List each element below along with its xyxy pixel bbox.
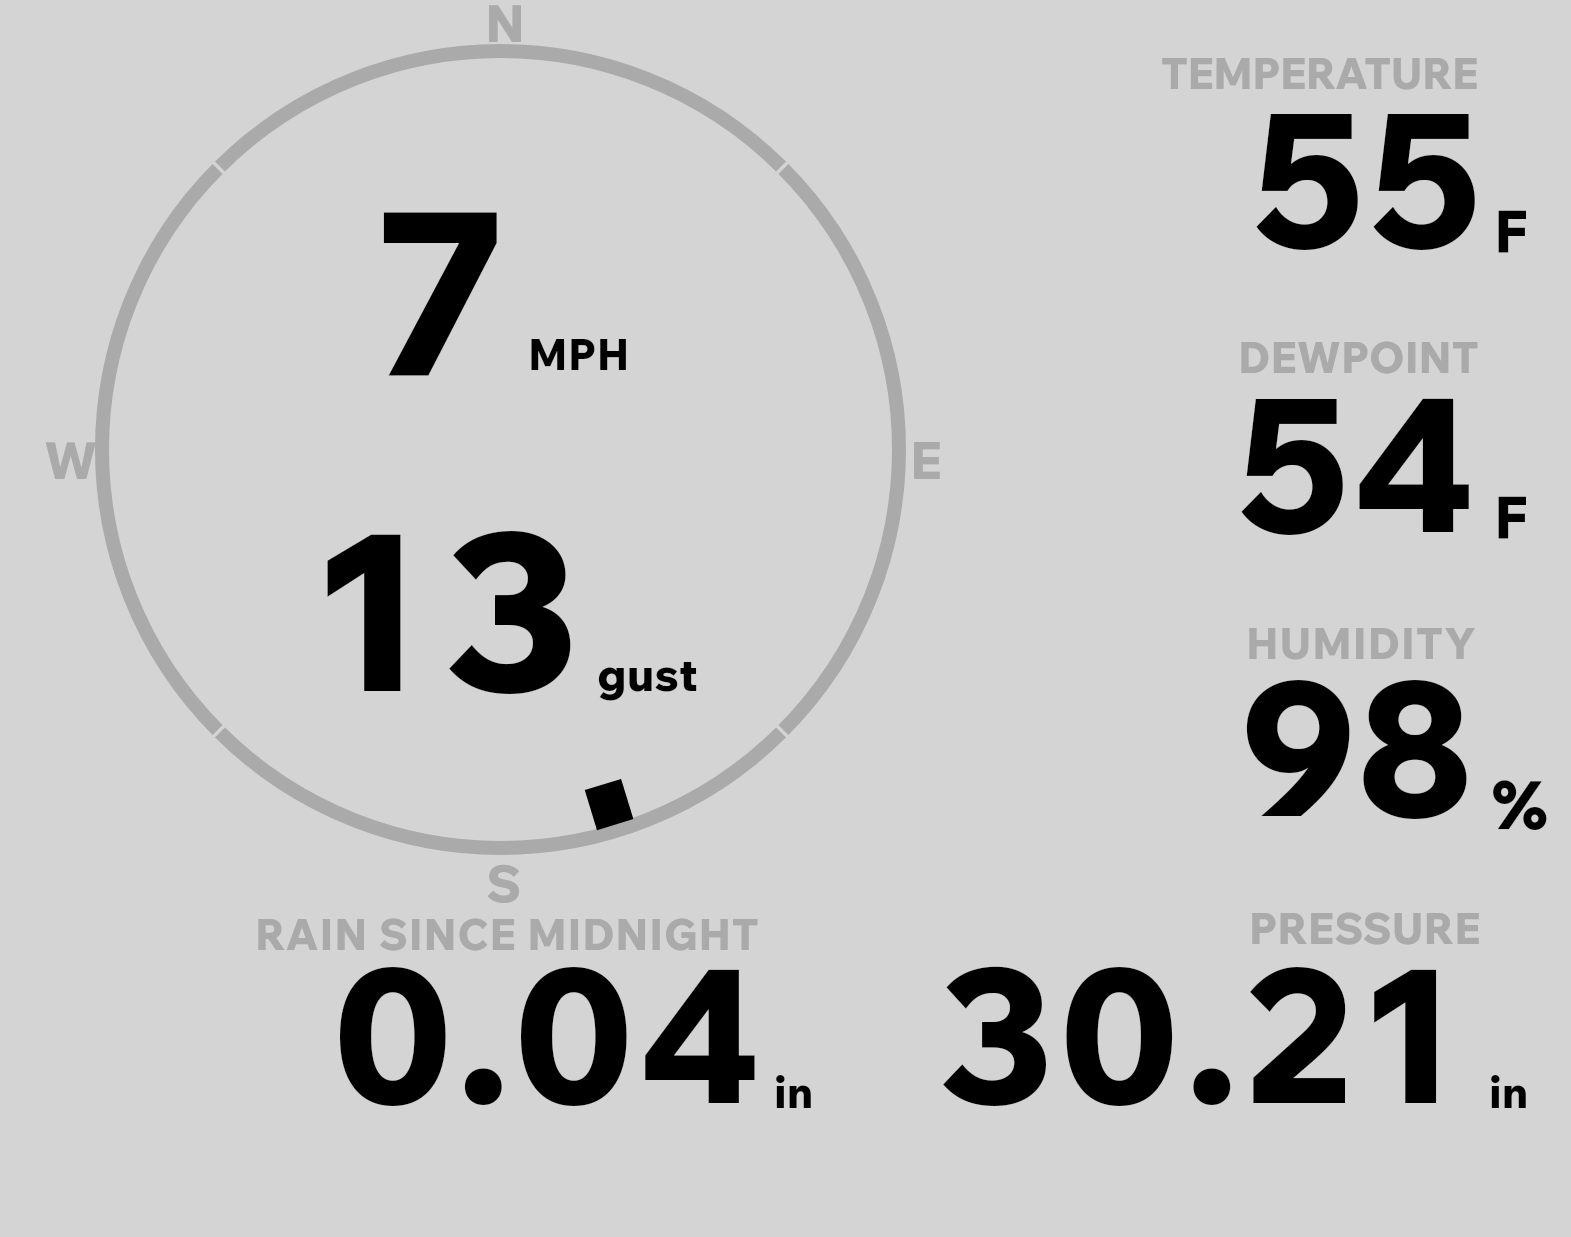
staticText: in <box>774 1064 814 1119</box>
staticText: TEMPERATURE <box>1161 46 1478 100</box>
staticText: HUMIDITY <box>1246 616 1477 670</box>
staticText: W <box>44 427 98 493</box>
button[interactable]: Rain since midnight 0.04 inches <box>250 905 820 1115</box>
staticText: E <box>910 427 942 493</box>
staticText: F <box>1494 481 1528 554</box>
staticText: 0.04 <box>334 916 768 1150</box>
staticText: DEWPOINT <box>1238 330 1479 384</box>
staticText: F <box>1494 195 1528 268</box>
staticText: RAIN SINCE MIDNIGHT <box>255 907 760 961</box>
button[interactable]: Dewpoint 54 degrees Fahrenheit <box>1150 335 1560 545</box>
button[interactable]: Wind 7 miles per hour, gusting 13 <box>95 44 906 855</box>
button[interactable]: Pressure 30.21 inches <box>930 905 1540 1115</box>
staticText: 54 <box>1237 345 1479 579</box>
staticText: gust <box>597 645 698 703</box>
staticText: in <box>1489 1064 1529 1119</box>
staticText: 13 <box>310 470 601 746</box>
staticText: PRESSURE <box>1249 901 1481 955</box>
staticText: 30.21 <box>940 916 1464 1150</box>
other: Wind direction dial <box>0 0 1571 1237</box>
staticText: % <box>1492 761 1548 845</box>
staticText: 98 <box>1240 629 1474 863</box>
staticText: N <box>485 0 526 56</box>
staticText: 55 <box>1252 60 1486 294</box>
staticText: MPH <box>528 327 630 381</box>
staticText: 7 <box>373 147 514 433</box>
staticText: S <box>486 850 522 916</box>
button[interactable]: Temperature 55 degrees Fahrenheit <box>1150 50 1560 260</box>
button[interactable]: Humidity 98 percent <box>1150 620 1571 830</box>
